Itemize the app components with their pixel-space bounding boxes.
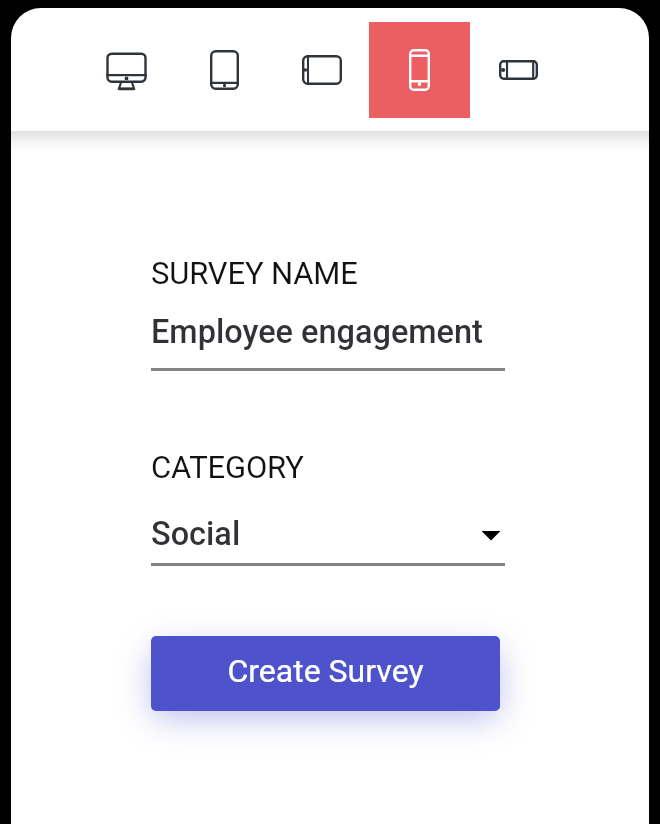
staticText: Employee engagement [151,313,483,351]
staticText: SURVEY NAME [151,255,358,291]
button[interactable]: Category: Social. Open dropdown [151,503,505,565]
button[interactable]: Phone portrait preview [369,22,470,118]
staticText: Create Survey [227,652,424,690]
staticText: CATEGORY [151,449,304,485]
button[interactable]: Desktop preview [77,22,175,118]
button[interactable]: Create Survey [151,636,500,711]
staticText: Social [151,515,241,553]
button[interactable]: Tablet portrait preview [175,22,273,118]
button[interactable]: Phone landscape preview [469,22,567,118]
button[interactable]: Tablet landscape preview [273,22,371,118]
